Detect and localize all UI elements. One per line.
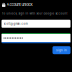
staticText: Sign in <box>56 49 67 52</box>
staticText: scott@gmail.com <box>3 22 27 25</box>
staticText: To unlock, sign in with your Google acco… <box>1 12 67 15</box>
button[interactable]: Sign in <box>52 46 70 54</box>
staticText: Account unlock <box>7 2 33 7</box>
